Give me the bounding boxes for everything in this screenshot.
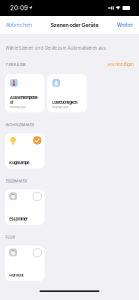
button[interactable]: Luftfeuchtigkeit xyxy=(47,74,87,112)
staticText: FLUR xyxy=(6,235,16,240)
staticText: Immer ein xyxy=(52,105,68,109)
staticText: Abbrechen xyxy=(6,22,32,28)
staticText: 20:09 xyxy=(10,4,28,12)
button[interactable]: Esszimmer xyxy=(5,189,44,225)
button[interactable]: Aussentemperatur xyxy=(5,74,44,112)
button[interactable]: Flurlicht xyxy=(5,245,44,281)
staticText: TERRASSE xyxy=(6,62,26,67)
staticText: Luftfeuchtigkeit xyxy=(52,100,77,105)
button[interactable]: Alle hinzufügen xyxy=(107,62,133,67)
button[interactable]: Abbrechen xyxy=(6,18,32,32)
button[interactable]: Kugellampe xyxy=(5,133,44,169)
staticText: Kugellampe xyxy=(9,160,29,165)
staticText: Aussentemperatur xyxy=(10,95,39,105)
staticText: Weiter xyxy=(117,22,133,28)
staticText: ESSZIMMER xyxy=(6,179,28,183)
staticText: WOHNZIMMER xyxy=(6,122,35,127)
staticText: Wähle Szenen und Geräte zum Automatisier… xyxy=(6,45,107,51)
staticText: Esszimmer xyxy=(9,217,28,221)
staticText: Immer ein xyxy=(10,105,26,109)
button[interactable]: Weiter xyxy=(117,18,133,32)
staticText: Flurlicht xyxy=(9,273,23,278)
staticText: Alle hinzufügen xyxy=(107,62,133,67)
staticText: Szenen oder Geräte xyxy=(50,22,98,28)
